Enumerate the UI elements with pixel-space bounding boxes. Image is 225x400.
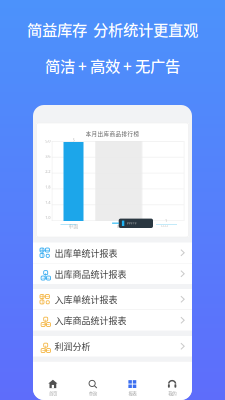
staticText: 利润分析	[54, 340, 90, 353]
staticText: 3.6	[45, 154, 50, 159]
button[interactable]: 出库单统计报表	[33, 242, 192, 263]
staticText: 5	[72, 137, 74, 142]
staticText: 我的	[168, 390, 176, 396]
button[interactable]: 我的	[152, 361, 192, 400]
staticText: 入库单统计报表	[54, 293, 117, 306]
button[interactable]: 首页	[33, 361, 73, 400]
staticText: 中国	[68, 222, 78, 229]
staticText: 1.0	[45, 215, 50, 220]
button[interactable]: 入库商品统计报表	[33, 310, 192, 330]
staticText: 简益库存 分析统计更直观	[27, 18, 198, 40]
button[interactable]: 报表	[112, 361, 152, 400]
staticText: 首页	[49, 390, 57, 396]
staticText: 简洁 + 高效 + 无广告	[45, 54, 180, 76]
staticText: 00010	[127, 221, 137, 225]
staticText: 本月出库商品排行榜	[85, 129, 139, 138]
staticText: 报表	[128, 390, 136, 396]
staticText: 出库单统计报表	[54, 246, 117, 259]
staticText: 入库商品统计报表	[54, 314, 126, 327]
staticText: 查询	[89, 390, 97, 396]
staticText: 5.0	[45, 138, 50, 144]
staticText: 0	[117, 224, 119, 229]
staticText: 出库商品统计报表	[54, 267, 126, 280]
staticText: 2.2	[45, 169, 50, 174]
staticText: 1	[165, 218, 167, 223]
staticText: 1.4	[45, 199, 50, 205]
staticText: 1.8	[45, 184, 50, 189]
button[interactable]: 查询	[73, 361, 113, 400]
button[interactable]: 利润分析	[33, 336, 192, 356]
button[interactable]: 出库商品统计报表	[33, 263, 192, 284]
button[interactable]: 入库单统计报表	[33, 289, 192, 309]
staticText: 2222	[160, 224, 168, 227]
